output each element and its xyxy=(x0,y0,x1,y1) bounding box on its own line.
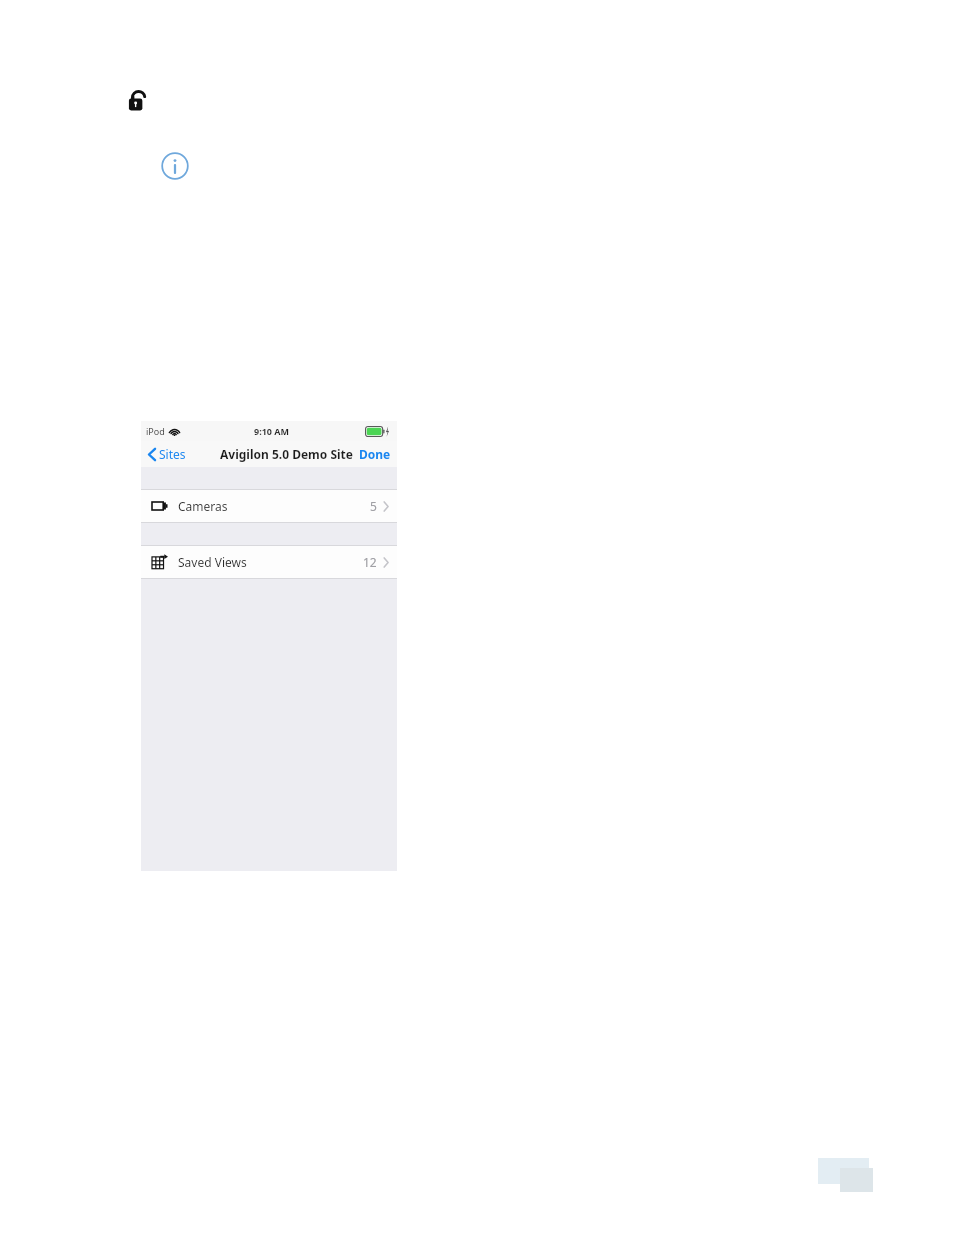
staticText: Sites xyxy=(159,446,186,462)
staticText: 12 xyxy=(363,554,377,570)
staticText: Avigilon 5.0 Demo Site xyxy=(220,446,353,462)
staticText: Done xyxy=(359,446,391,462)
button[interactable]: Done xyxy=(358,444,392,464)
staticText: Cameras xyxy=(178,498,228,514)
button[interactable]: Unlocked xyxy=(127,86,151,112)
button[interactable]: Sites xyxy=(146,444,188,464)
staticText: iPod xyxy=(146,425,165,437)
staticText: 5 xyxy=(370,498,377,514)
button[interactable]: Information xyxy=(159,150,191,182)
button[interactable]: Cameras xyxy=(141,490,397,522)
staticText: Saved Views xyxy=(178,554,247,570)
staticText: 9:10 AM xyxy=(254,425,290,437)
button[interactable]: Saved Views xyxy=(141,546,397,578)
